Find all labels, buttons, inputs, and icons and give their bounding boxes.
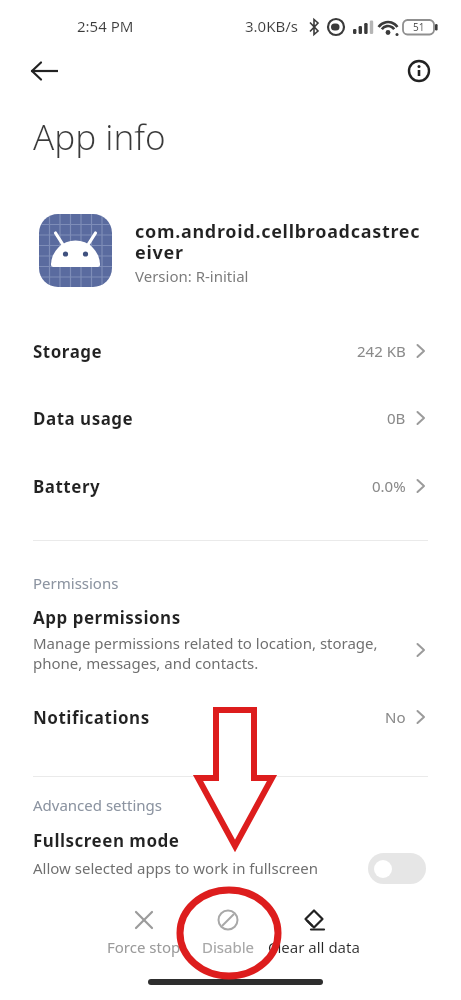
staticText: 0B [387,408,406,428]
staticText: App info [33,113,166,161]
staticText: Force stop [107,937,181,957]
staticText: Notifications [33,706,150,729]
staticText: 2:54 PM [77,16,134,36]
button[interactable] [368,853,426,884]
staticText: Version: R-initial [135,266,249,286]
staticText: 0.0% [372,476,406,496]
button[interactable] [0,385,461,452]
button[interactable] [0,453,461,520]
button[interactable]: Force stop [84,900,204,960]
staticText: Battery [33,475,101,498]
staticText: 3.0KB/s [245,16,298,36]
staticText: 242 KB [357,341,406,361]
staticText: Permissions [33,573,119,593]
staticText: No [385,707,406,727]
staticText: Advanced settings [33,795,162,815]
button[interactable]: Clear all data [254,900,374,960]
staticText: Clear all data [268,937,360,957]
staticText: com.android.cellbroadcastrec eiver [135,219,421,265]
staticText: Disable [202,937,254,957]
staticText: App permissions [33,606,181,629]
button[interactable] [398,50,440,92]
staticText: Allow selected apps to work in fullscree… [33,858,318,878]
button[interactable] [20,50,70,92]
button[interactable]: Disable [168,900,288,960]
button[interactable] [0,688,461,748]
staticText: Fullscreen mode [33,829,180,852]
button[interactable] [0,317,461,384]
staticText: Data usage [33,407,134,430]
staticText: Storage [33,340,103,363]
staticText: phone, messages, and contacts. [33,653,259,673]
staticText: 51 [413,20,425,34]
staticText: Manage permissions related to location, … [33,633,378,653]
button[interactable] [0,598,461,683]
